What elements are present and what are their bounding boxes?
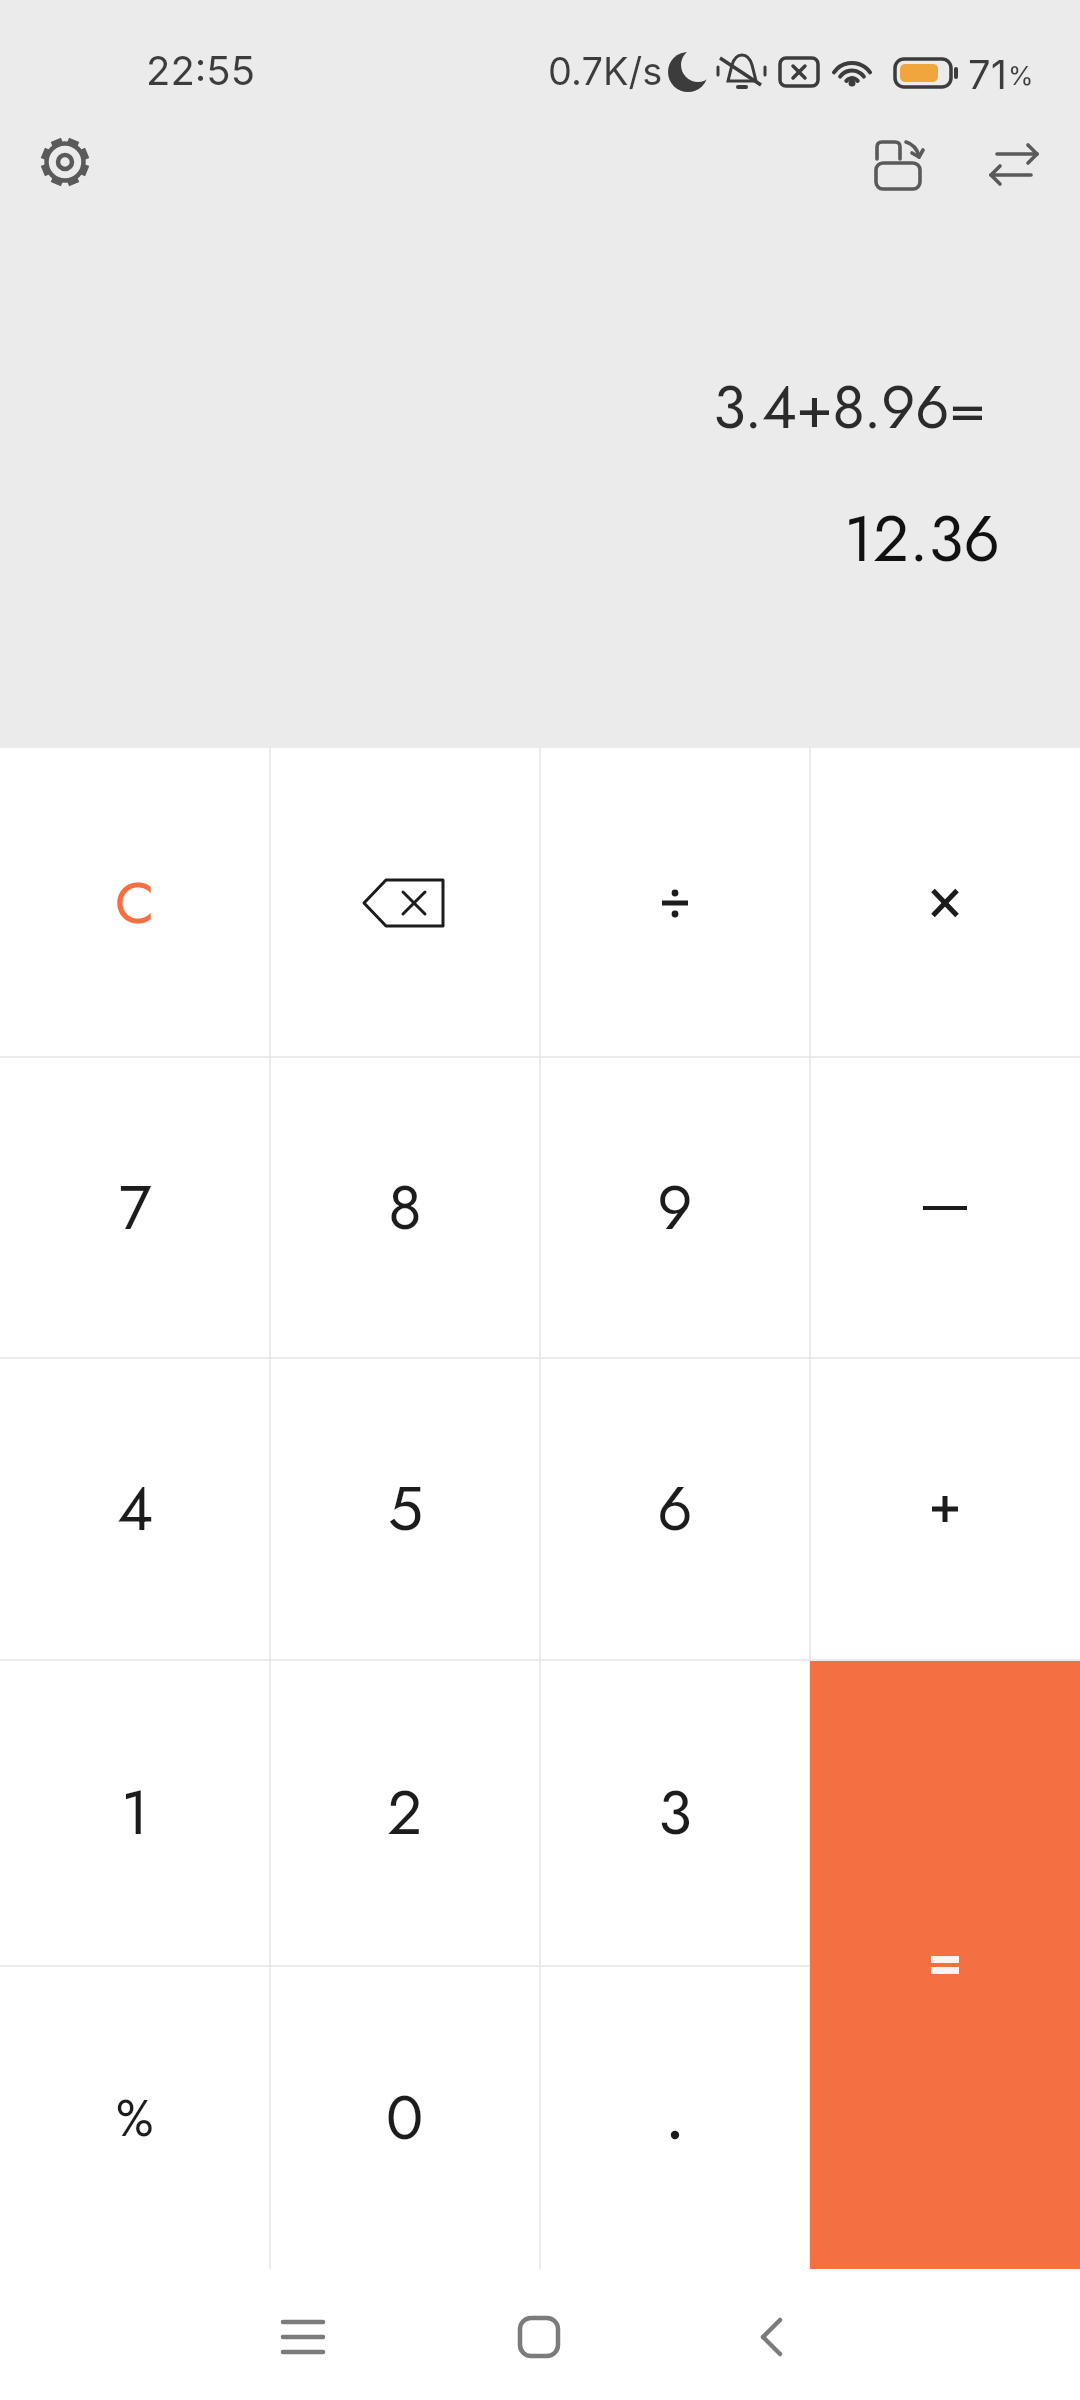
staticText: 6: [657, 1464, 693, 1554]
staticText: 2: [387, 1768, 423, 1858]
staticText: 22:55: [146, 46, 255, 94]
button[interactable]: 6: [540, 1358, 810, 1660]
button[interactable]: [479, 2277, 599, 2397]
staticText: %: [116, 2082, 154, 2154]
button[interactable]: 7: [0, 1057, 270, 1358]
button[interactable]: 1: [0, 1660, 270, 1966]
staticText: 5: [388, 1464, 423, 1554]
button[interactable]: [810, 748, 1080, 1057]
staticText: 12.36: [844, 493, 1001, 585]
button[interactable]: 2: [270, 1660, 540, 1966]
button[interactable]: [270, 748, 540, 1057]
staticText: C: [115, 861, 155, 945]
button[interactable]: [710, 2277, 830, 2397]
staticText: 3: [658, 1768, 692, 1858]
button[interactable]: C: [0, 748, 270, 1057]
button[interactable]: [810, 1358, 1080, 1660]
button[interactable]: 3: [540, 1660, 810, 1966]
staticText: 9: [657, 1163, 693, 1253]
button[interactable]: 0: [270, 1966, 540, 2269]
button[interactable]: 9: [540, 1057, 810, 1358]
staticText: 3.4+8.96=: [713, 364, 986, 451]
staticText: 4: [117, 1464, 154, 1554]
button[interactable]: [982, 136, 1046, 192]
button[interactable]: [38, 135, 92, 189]
staticText: %: [1008, 60, 1034, 91]
button[interactable]: 5: [270, 1358, 540, 1660]
button[interactable]: [810, 1661, 1080, 2269]
button[interactable]: %: [0, 1966, 270, 2269]
staticText: 8: [388, 1163, 422, 1253]
button[interactable]: 4: [0, 1358, 270, 1660]
staticText: 71: [968, 50, 1007, 98]
staticText: 0.7K/s: [548, 48, 663, 94]
staticText: 1: [121, 1768, 149, 1858]
button[interactable]: [866, 132, 930, 196]
button[interactable]: 8: [270, 1057, 540, 1358]
button[interactable]: [243, 2277, 363, 2397]
staticText: 0: [386, 2073, 424, 2163]
button[interactable]: [810, 1057, 1080, 1358]
button[interactable]: [540, 748, 810, 1057]
staticText: 7: [119, 1163, 152, 1253]
button[interactable]: [540, 1966, 810, 2269]
